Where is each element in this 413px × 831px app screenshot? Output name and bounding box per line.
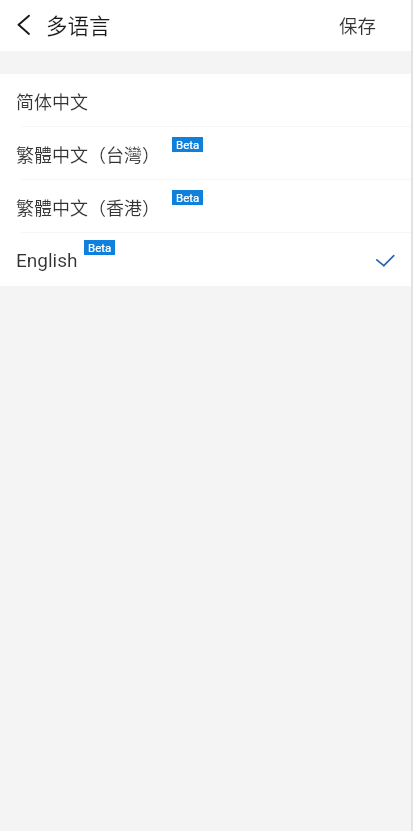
staticText: 繁體中文（台灣） — [16, 141, 160, 167]
button[interactable]: English — [0, 233, 413, 286]
other: Selected — [374, 250, 394, 270]
staticText: 繁體中文（香港） — [16, 194, 160, 220]
staticText: English — [16, 249, 78, 271]
button[interactable]: 繁體中文（香港） — [0, 180, 413, 233]
button[interactable]: 繁體中文（台灣） — [0, 127, 413, 180]
staticText: 多语言 — [46, 9, 111, 40]
button[interactable]: 保存 — [339, 0, 377, 51]
staticText: Beta — [88, 241, 112, 254]
staticText: Beta — [176, 138, 200, 151]
staticText: Beta — [176, 191, 200, 204]
button[interactable]: Back — [6, 8, 42, 44]
staticText: 简体中文 — [16, 88, 88, 114]
button[interactable]: 简体中文 — [0, 74, 413, 127]
staticText: 保存 — [339, 12, 377, 39]
